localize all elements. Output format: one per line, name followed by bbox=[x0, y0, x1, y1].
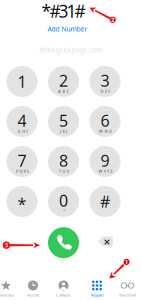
staticText: @thegeekpage.com bbox=[39, 46, 102, 54]
button[interactable]: 6 bbox=[89, 106, 120, 137]
staticText: 3 bbox=[100, 70, 109, 91]
button[interactable]: Call bbox=[48, 227, 79, 258]
staticText: Voicemail bbox=[119, 292, 136, 298]
button[interactable]: Keypad bbox=[83, 273, 111, 297]
button[interactable]: 0 bbox=[48, 186, 79, 217]
button[interactable]: Contacts bbox=[49, 273, 77, 297]
staticText: + bbox=[63, 207, 65, 212]
button[interactable]: 8 bbox=[48, 146, 79, 177]
button[interactable]: Favorites bbox=[0, 273, 20, 297]
staticText: PQRS bbox=[16, 169, 29, 174]
button[interactable]: Voicemail bbox=[113, 273, 141, 297]
staticText: MNO bbox=[99, 129, 112, 134]
button[interactable]: 3 bbox=[89, 66, 120, 97]
staticText: 0 bbox=[59, 190, 68, 211]
staticText: 2 bbox=[59, 70, 68, 91]
button[interactable]: 9 bbox=[89, 146, 120, 177]
staticText: 1 bbox=[125, 258, 128, 265]
staticText: WXYZ bbox=[98, 169, 112, 174]
staticText: # bbox=[100, 191, 110, 212]
staticText: Keypad bbox=[91, 292, 103, 298]
staticText: JKL bbox=[60, 129, 68, 134]
staticText: 3 bbox=[5, 242, 8, 249]
staticText: Add Number bbox=[47, 25, 87, 33]
staticText: Contacts bbox=[56, 292, 71, 298]
staticText: DEF bbox=[101, 89, 110, 94]
staticText: 5 bbox=[59, 110, 68, 131]
button[interactable]: Add Number bbox=[47, 25, 87, 33]
staticText: GHI bbox=[18, 129, 27, 134]
button[interactable]: Delete bbox=[97, 235, 113, 247]
button[interactable]: Recents bbox=[19, 273, 47, 297]
button[interactable]: 2 bbox=[48, 66, 79, 97]
staticText: 4 bbox=[17, 110, 26, 131]
staticText: *#31# bbox=[41, 0, 85, 22]
staticText: Recents bbox=[26, 292, 39, 298]
button[interactable]: 1 bbox=[6, 66, 37, 97]
button[interactable]: 4 bbox=[6, 106, 37, 137]
staticText: 7 bbox=[17, 150, 26, 171]
button[interactable]: 7 bbox=[6, 146, 37, 177]
staticText: Favorites bbox=[0, 292, 14, 298]
staticText: 9 bbox=[100, 150, 109, 171]
staticText: 8 bbox=[59, 150, 68, 171]
button[interactable]: # bbox=[89, 186, 120, 217]
button[interactable]: 5 bbox=[48, 106, 79, 137]
staticText: 2 bbox=[111, 16, 114, 23]
button[interactable]: * bbox=[6, 186, 37, 217]
staticText: TUV bbox=[59, 169, 69, 174]
staticText: ABC bbox=[58, 89, 70, 94]
staticText: 6 bbox=[100, 110, 109, 131]
staticText: 1 bbox=[17, 71, 26, 92]
staticText: * bbox=[17, 193, 26, 214]
